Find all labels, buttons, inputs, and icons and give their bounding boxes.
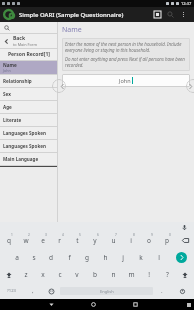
button[interactable]: c <box>51 266 68 283</box>
staticText: 12:37 <box>181 1 192 6</box>
staticText: n <box>111 270 116 279</box>
staticText: b <box>93 270 97 279</box>
button[interactable]: Name <box>0 61 57 74</box>
staticText: 6 <box>97 233 99 237</box>
button[interactable]: f <box>60 249 78 266</box>
button[interactable]: m <box>122 266 140 283</box>
staticText: Simple OARI (Sample Questionnaire) <box>19 11 124 19</box>
staticText: j <box>122 253 124 262</box>
button[interactable]: Enter <box>168 249 194 266</box>
button[interactable]: Shift <box>0 266 17 283</box>
button[interactable]: g <box>78 249 96 266</box>
staticText: a <box>15 253 19 262</box>
button[interactable]: i <box>122 232 140 249</box>
staticText: l <box>158 253 160 262</box>
button[interactable]: Comma <box>24 283 42 299</box>
staticText: 1 <box>11 233 13 237</box>
button[interactable]: z <box>17 266 34 283</box>
staticText: z <box>24 270 28 279</box>
button[interactable]: Save <box>151 8 164 21</box>
button[interactable]: ?123 <box>0 283 24 299</box>
button[interactable]: u <box>104 232 122 249</box>
staticText: ! <box>148 270 150 279</box>
button[interactable]: r <box>51 232 68 249</box>
button[interactable]: w <box>17 232 34 249</box>
button[interactable]: ? <box>158 266 176 283</box>
button[interactable]: Emoji <box>42 283 60 299</box>
button[interactable]: Sex <box>0 88 57 100</box>
button[interactable]: Back <box>38 299 64 310</box>
button[interactable]: Previous <box>52 79 66 93</box>
staticText: t <box>76 236 79 245</box>
staticText: u <box>111 236 116 245</box>
button[interactable]: h <box>96 249 114 266</box>
button[interactable]: a <box>8 249 25 266</box>
button[interactable]: Person Record[1] <box>0 49 57 60</box>
button[interactable]: Recents <box>122 299 148 310</box>
button[interactable]: Back <box>0 34 57 48</box>
button[interactable]: v <box>68 266 86 283</box>
button[interactable]: John <box>62 74 190 87</box>
button[interactable]: t <box>68 232 86 249</box>
button[interactable]: q <box>0 232 17 249</box>
button[interactable]: b <box>86 266 104 283</box>
staticText: v <box>75 270 79 279</box>
button[interactable]: l <box>150 249 168 266</box>
button[interactable]: j <box>114 249 132 266</box>
staticText: 0 <box>169 233 171 237</box>
staticText: k <box>139 253 143 262</box>
button[interactable]: ! <box>140 266 158 283</box>
staticText: Age <box>3 104 12 110</box>
button[interactable]: p <box>158 232 176 249</box>
staticText: 4 <box>62 233 64 237</box>
button[interactable]: Settings <box>171 283 194 299</box>
button[interactable]: More options <box>177 8 190 21</box>
button[interactable]: Shift right <box>176 266 194 283</box>
button[interactable]: Search <box>164 8 177 21</box>
staticText: i <box>130 236 132 245</box>
button[interactable]: y <box>86 232 104 249</box>
button[interactable]: Next <box>186 79 194 93</box>
staticText: s <box>32 253 36 262</box>
staticText: c <box>58 270 62 279</box>
button[interactable]: Voice input <box>180 223 189 232</box>
button[interactable]: s <box>25 249 42 266</box>
staticText: f <box>68 253 71 262</box>
button[interactable]: Relationship <box>0 75 57 87</box>
button[interactable]: Backspace <box>176 232 194 249</box>
button[interactable]: x <box>34 266 51 283</box>
staticText: y <box>93 236 97 245</box>
button[interactable]: n <box>104 266 122 283</box>
button[interactable]: Age <box>0 101 57 113</box>
button[interactable]: English <box>60 287 153 295</box>
staticText: q <box>7 236 11 245</box>
button[interactable]: o <box>140 232 158 249</box>
staticText: Name <box>62 25 82 35</box>
button[interactable]: e <box>34 232 51 249</box>
staticText: 5 <box>79 233 81 237</box>
button[interactable]: d <box>42 249 60 266</box>
button[interactable]: k <box>132 249 150 266</box>
staticText: Literate <box>3 117 22 123</box>
staticText: John <box>3 68 11 73</box>
button[interactable]: Literate <box>0 114 57 126</box>
staticText: o <box>147 236 151 245</box>
staticText: Name <box>3 62 17 68</box>
staticText: Main Language <box>3 156 39 162</box>
button[interactable]: Search <box>0 22 57 33</box>
staticText: 7 <box>115 233 117 237</box>
staticText: ? <box>166 270 169 279</box>
staticText: John <box>119 77 131 84</box>
staticText: r <box>58 236 61 245</box>
button[interactable]: Languages Spoken <box>0 127 57 139</box>
staticText: 9 <box>151 233 153 237</box>
staticText: e <box>41 236 45 245</box>
button[interactable]: Main Language <box>0 153 57 165</box>
staticText: English <box>100 289 114 294</box>
staticText: p <box>165 236 169 245</box>
button[interactable]: Home <box>80 299 106 310</box>
staticText: Relationship <box>3 78 32 84</box>
button[interactable]: Languages Spoken (Other) <box>0 140 57 152</box>
staticText: 3 <box>45 233 47 237</box>
